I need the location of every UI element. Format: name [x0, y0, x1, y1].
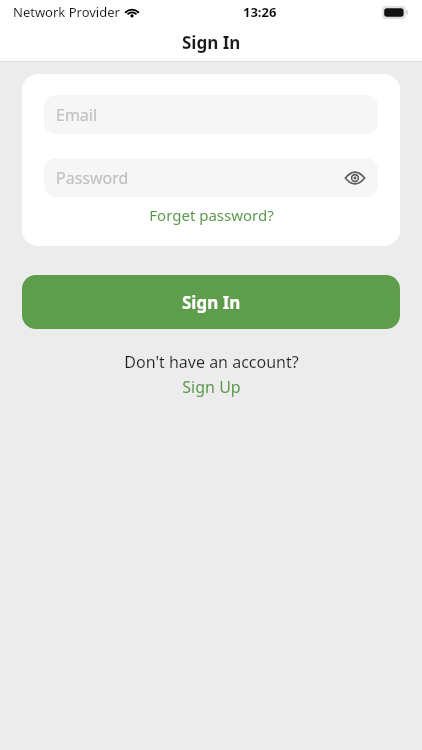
staticText: Sign In: [182, 31, 241, 54]
button[interactable]: Show password: [342, 165, 368, 191]
button[interactable]: Sign Up: [182, 376, 241, 398]
staticText: Password: [56, 167, 342, 189]
staticText: Forget password?: [149, 205, 274, 225]
button[interactable]: Email: [44, 95, 378, 134]
button[interactable]: Forget password?: [44, 205, 378, 225]
staticText: Network Provider: [13, 3, 120, 21]
button[interactable]: Sign In: [22, 275, 400, 329]
staticText: 13:26: [243, 3, 277, 21]
staticText: Email: [56, 104, 368, 126]
staticText: Sign Up: [182, 376, 241, 398]
staticText: Sign In: [182, 291, 241, 314]
staticText: Don't have an account?: [124, 351, 299, 373]
button[interactable]: Password: [44, 158, 378, 197]
